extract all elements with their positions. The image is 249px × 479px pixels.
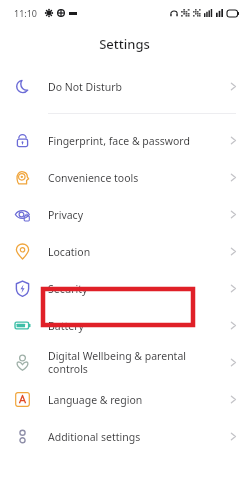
button[interactable]: Fingerprint, face & password <box>0 122 249 159</box>
button[interactable]: Do Not Disturb <box>0 68 249 105</box>
staticText: Location <box>48 245 230 259</box>
staticText: 11:10 <box>14 7 38 19</box>
staticText: Battery <box>48 319 230 333</box>
staticText: Language & region <box>48 393 230 407</box>
button[interactable]: Security <box>0 270 249 307</box>
staticText: Digital Wellbeing & parental controls <box>48 349 230 376</box>
staticText: Additional settings <box>48 430 230 444</box>
button[interactable]: Location <box>0 233 249 270</box>
staticText: Convenience tools <box>48 171 230 185</box>
button[interactable]: Additional settings <box>0 418 249 455</box>
staticText: Privacy <box>48 208 230 222</box>
staticText: Settings <box>99 35 150 53</box>
staticText: Security <box>48 282 230 296</box>
button[interactable]: Battery <box>0 307 249 344</box>
staticText: Do Not Disturb <box>48 80 230 94</box>
button[interactable]: Digital Wellbeing & parental controls <box>0 344 249 381</box>
button[interactable]: Language & region <box>0 381 249 418</box>
staticText: Fingerprint, face & password <box>48 134 230 148</box>
button[interactable]: Convenience tools <box>0 159 249 196</box>
button[interactable]: Privacy <box>0 196 249 233</box>
